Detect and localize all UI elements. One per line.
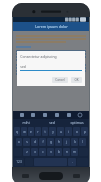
button[interactable]: a [16,138,22,146]
staticText: w [23,130,26,134]
staticText: optimus [70,120,84,125]
staticText: k [74,140,76,144]
staticText: . [72,160,73,164]
button[interactable]: c [39,148,46,156]
staticText: Lorem ipsum dolor [35,24,68,29]
button[interactable]: Keyboard tool 3 [42,112,48,118]
button[interactable]: t [42,127,48,136]
button[interactable]: d [31,138,38,146]
button[interactable]: sed [20,64,82,71]
staticText: sed [49,120,55,125]
button[interactable]: g [47,138,54,146]
button[interactable]: z [23,148,30,156]
button[interactable]: r [35,127,41,136]
button[interactable]: sed [39,119,64,126]
staticText: e [30,130,32,134]
button[interactable]: q [14,127,20,136]
staticText: 123 [16,160,22,164]
staticText: p [84,130,86,134]
button[interactable]: j [63,138,70,146]
staticText: c [42,150,44,154]
staticText: Cancel [55,78,65,82]
button[interactable]: n [63,148,70,156]
button[interactable]: y [49,127,56,136]
button[interactable]: . [68,158,76,166]
staticText: t [44,130,46,134]
button[interactable]: Keyboard tool 4 [54,112,60,118]
staticText: g [50,140,52,144]
staticText: y [52,130,54,134]
staticText: l [82,140,83,144]
staticText: mihi [22,120,30,125]
button[interactable]: m [71,148,78,156]
staticText: i [68,130,69,134]
staticText: q [16,130,18,134]
button[interactable]: u [57,127,64,136]
staticText: Consectetur adipiscing [20,54,57,59]
button[interactable]: Keyboard tool 1 [19,112,25,118]
button[interactable]: p [81,127,88,136]
button[interactable]: f [39,138,46,146]
staticText: h [58,140,60,144]
button[interactable]: Home [39,172,63,180]
button[interactable]: mihi [13,119,39,126]
button[interactable]: e [28,127,34,136]
staticText: n [66,150,68,154]
button[interactable]: Keyboard tool 2 [30,112,36,118]
staticText: sed [20,65,26,69]
button[interactable]: 123 [14,158,24,166]
button[interactable]: w [21,127,27,136]
button[interactable]: x [31,148,38,156]
staticText: f [42,140,44,144]
staticText: j [66,140,67,144]
button[interactable]: i [65,127,72,136]
button[interactable]: Keyboard tool 5 [66,112,72,118]
button[interactable]: o [73,127,80,136]
staticText: b [58,150,60,154]
staticText: s [26,140,28,144]
staticText: v [50,150,52,154]
staticText: OK [74,78,79,82]
staticText: r [37,130,39,134]
button[interactable]: b [55,148,62,156]
button[interactable]: k [71,138,78,146]
button[interactable]: s [23,138,30,146]
button[interactable]: v [47,148,54,156]
staticText: a [18,140,20,144]
staticText: u [60,130,62,134]
button[interactable]: optimus [64,119,89,126]
button[interactable]: Keyboard tool 6 [77,112,83,118]
button[interactable]: h [55,138,62,146]
staticText: z [26,150,28,154]
staticText: x [34,150,36,154]
button[interactable]: OK [71,77,82,83]
staticText: o [76,130,78,134]
button[interactable]: Cancel [52,77,68,83]
staticText: d [34,140,36,144]
staticText: m [73,150,76,154]
button[interactable]: l [79,138,86,146]
